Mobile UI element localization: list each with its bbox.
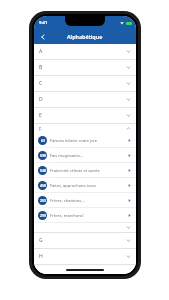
staticText: Fais mugissants... [50,153,84,158]
staticText: 63 [41,138,45,143]
button[interactable]: B [34,60,136,75]
staticText: 548 [40,168,46,173]
staticText: Fraternité céleste et sainte [50,168,100,173]
button[interactable]: 299 [34,208,136,222]
button[interactable]: Back [34,29,136,44]
button[interactable]: A [34,44,136,59]
staticText: D [39,96,43,103]
staticText: B [39,64,43,71]
button[interactable]: 548 [34,163,136,177]
button[interactable]: F [34,124,136,133]
staticText: 203 [40,198,46,203]
staticText: A [39,48,43,55]
button[interactable]: E [34,108,136,123]
button[interactable]: 203 [34,193,136,207]
staticText: Faisons éclater notre joie [50,138,97,143]
button[interactable]: Collapse [34,223,136,232]
staticText: Faites, approchons-nous [50,183,97,188]
button[interactable]: G [34,233,136,248]
staticText: 9:41 [39,20,48,26]
staticText: G [39,237,43,244]
staticText: 598 [40,153,46,158]
staticText: E [39,112,42,119]
button[interactable]: H [34,249,136,264]
staticText: 458 [40,183,46,188]
button[interactable]: D [34,92,136,107]
staticText: H [39,253,43,260]
button[interactable]: C [34,76,136,91]
staticText: F [39,126,42,132]
staticText: Frères, chantons ... [50,198,86,203]
button[interactable]: 63 [34,133,136,147]
button[interactable]: 598 [34,148,136,162]
staticText: C [39,80,43,87]
staticText: Alphabétique [67,33,103,40]
staticText: 299 [40,213,46,218]
staticText: Frères, marchons! [50,213,84,218]
button[interactable]: Back [37,31,48,42]
button[interactable]: 458 [34,178,136,192]
